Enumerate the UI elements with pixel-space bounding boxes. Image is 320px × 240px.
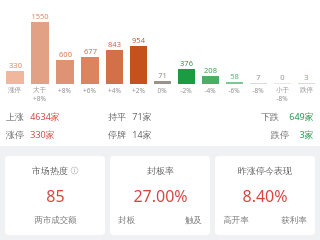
staticText: -2%: [180, 86, 192, 95]
staticText: +6%: [83, 86, 96, 95]
staticText: -6%: [228, 86, 240, 95]
staticText: 涨停: [6, 129, 24, 140]
other: Info: [71, 167, 78, 174]
staticText: 4634家: [30, 110, 60, 122]
staticText: 上涨: [6, 111, 24, 122]
staticText: 376: [180, 58, 193, 68]
staticText: 1550: [31, 11, 49, 21]
staticText: 0%: [157, 86, 167, 95]
staticText: 昨涨停今表现: [238, 165, 292, 176]
staticText: 649家: [289, 110, 314, 122]
staticText: 85: [46, 185, 65, 207]
button[interactable]: 600: [52, 6, 77, 95]
button[interactable]: 71: [150, 6, 174, 95]
staticText: 14家: [132, 128, 152, 140]
staticText: 3: [304, 72, 309, 82]
staticText: 677: [84, 46, 97, 56]
staticText: 600: [59, 49, 72, 59]
button[interactable]: 0: [270, 6, 294, 103]
staticText: 27.00%: [133, 185, 188, 207]
staticText: 大于: [33, 86, 46, 94]
staticText: 71家: [132, 110, 152, 122]
staticText: 持平: [108, 111, 126, 122]
staticText: 触及: [185, 215, 202, 226]
staticText: 市场热度: [32, 165, 68, 176]
button[interactable]: 843: [102, 6, 126, 95]
staticText: 208: [204, 65, 217, 75]
staticText: -8%: [252, 86, 264, 95]
button[interactable]: 7: [246, 6, 270, 95]
staticText: 71: [158, 70, 167, 80]
staticText: 下跌: [261, 111, 279, 122]
button[interactable]: 954: [126, 6, 150, 95]
staticText: -4%: [204, 86, 216, 95]
button[interactable]: 封板率: [110, 156, 210, 235]
staticText: 0: [280, 72, 285, 82]
staticText: 封板: [118, 215, 135, 226]
staticText: 小于: [276, 86, 289, 94]
staticText: -8%: [276, 94, 288, 103]
staticText: 330: [9, 60, 22, 70]
button[interactable]: 市场热度: [5, 156, 105, 235]
staticText: 954: [132, 35, 145, 45]
staticText: 获利率: [281, 215, 307, 226]
staticText: 843: [108, 39, 121, 49]
staticText: 两市成交额: [34, 215, 77, 226]
staticText: 跌停: [271, 129, 289, 140]
button[interactable]: 58: [222, 6, 246, 95]
staticText: +8%: [33, 94, 46, 103]
button[interactable]: 昨涨停今表现: [215, 156, 315, 235]
staticText: 高开率: [223, 215, 249, 226]
staticText: 停牌: [108, 129, 126, 140]
staticText: 封板率: [147, 165, 174, 176]
button[interactable]: 376: [174, 6, 198, 95]
button[interactable]: 1550: [27, 6, 52, 103]
staticText: 58: [230, 71, 239, 81]
staticText: +2%: [132, 86, 145, 95]
staticText: +8%: [58, 86, 71, 95]
staticText: 330家: [30, 128, 55, 140]
staticText: 跌停: [300, 86, 313, 94]
button[interactable]: 330: [2, 6, 27, 94]
staticText: +4%: [108, 86, 121, 95]
staticText: 7: [256, 72, 261, 82]
button[interactable]: 3: [294, 6, 318, 94]
button[interactable]: 208: [198, 6, 222, 95]
staticText: 3家: [299, 128, 314, 140]
staticText: 涨停: [8, 86, 21, 94]
staticText: 8.40%: [242, 185, 288, 207]
button[interactable]: 677: [77, 6, 102, 95]
